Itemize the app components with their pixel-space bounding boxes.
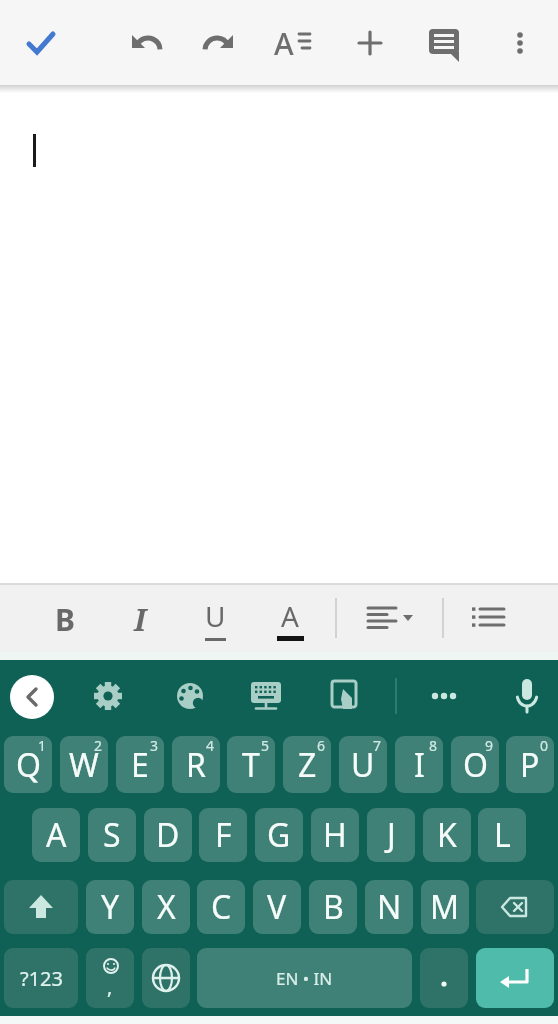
staticText: Q	[16, 743, 41, 787]
staticText: S	[103, 813, 121, 857]
staticText: 7	[373, 736, 382, 755]
staticText: M	[430, 885, 460, 929]
staticText: A	[46, 813, 67, 857]
staticText: B	[55, 599, 75, 640]
button[interactable]	[321, 672, 369, 720]
staticText: I	[414, 743, 425, 787]
staticText: 8	[429, 736, 438, 755]
button[interactable]	[496, 19, 544, 67]
button[interactable]: O	[451, 736, 499, 793]
button[interactable]	[242, 672, 290, 720]
button[interactable]: Y	[86, 880, 134, 934]
button[interactable]: B	[45, 597, 85, 641]
button[interactable]: T	[227, 736, 275, 793]
button[interactable]	[121, 19, 169, 67]
button[interactable]: S	[88, 808, 136, 862]
button[interactable]: E	[116, 736, 164, 793]
staticText: I	[134, 599, 147, 640]
staticText: G	[267, 813, 291, 857]
button[interactable]	[362, 596, 418, 640]
staticText: E	[131, 743, 149, 787]
button[interactable]	[10, 675, 54, 719]
staticText: EN • IN	[276, 967, 333, 990]
staticText: 1	[38, 736, 47, 755]
button[interactable]	[420, 672, 468, 720]
staticText: ,	[107, 973, 113, 1000]
button[interactable]: X	[142, 880, 190, 934]
staticText: 0	[540, 736, 549, 755]
button[interactable]	[84, 672, 132, 720]
staticText: V	[267, 885, 287, 929]
button[interactable]: J	[367, 808, 415, 862]
button[interactable]: Z	[283, 736, 331, 793]
button[interactable]: M	[421, 880, 469, 934]
button[interactable]	[503, 672, 551, 720]
button[interactable]: I	[120, 597, 160, 641]
button[interactable]: C	[197, 880, 245, 934]
staticText: F	[215, 813, 232, 857]
button[interactable]	[16, 19, 64, 67]
staticText: X	[157, 885, 176, 929]
staticText: N	[377, 885, 402, 929]
staticText: D	[156, 813, 180, 857]
button[interactable]	[166, 672, 214, 720]
button[interactable]: B	[309, 880, 357, 934]
button[interactable]: EN • IN	[197, 948, 412, 1008]
staticText: A	[274, 23, 294, 64]
button[interactable]: V	[253, 880, 301, 934]
staticText: B	[323, 885, 344, 929]
staticText: 2	[94, 736, 103, 755]
button[interactable]: N	[365, 880, 413, 934]
staticText: 3	[150, 736, 159, 755]
button[interactable]	[466, 596, 514, 640]
button[interactable]: A	[270, 20, 318, 66]
button[interactable]	[142, 948, 190, 1008]
button[interactable]: F	[199, 808, 247, 862]
button[interactable]: D	[144, 808, 192, 862]
button[interactable]: U	[195, 597, 235, 641]
button[interactable]: A	[270, 597, 310, 641]
button[interactable]	[420, 19, 468, 67]
staticText: H	[323, 813, 347, 857]
staticText: Z	[298, 743, 317, 787]
staticText: J	[387, 813, 396, 857]
button[interactable]: U	[339, 736, 387, 793]
button[interactable]	[420, 948, 468, 1008]
button[interactable]: H	[311, 808, 359, 862]
staticText: ?123	[20, 965, 63, 992]
staticText: U	[351, 743, 375, 787]
button[interactable]	[346, 19, 394, 67]
staticText: K	[437, 813, 457, 857]
staticText: O	[463, 743, 488, 787]
button[interactable]	[476, 880, 554, 934]
staticText: 5	[261, 736, 270, 755]
button[interactable]	[4, 880, 78, 934]
staticText: A	[281, 597, 299, 635]
button[interactable]: W	[60, 736, 108, 793]
button[interactable]: Q	[4, 736, 52, 793]
button[interactable]	[476, 948, 554, 1008]
staticText: U	[205, 597, 226, 635]
staticText: T	[242, 743, 260, 787]
button[interactable]: ,	[86, 948, 134, 1008]
button[interactable]: L	[478, 808, 526, 862]
button[interactable]	[196, 19, 244, 67]
staticText: R	[186, 743, 206, 787]
button[interactable]: A	[32, 808, 80, 862]
staticText: L	[494, 813, 511, 857]
staticText: Y	[101, 885, 120, 929]
staticText: 4	[206, 736, 215, 755]
button[interactable]: I	[395, 736, 443, 793]
button[interactable]: K	[423, 808, 471, 862]
button[interactable]: R	[172, 736, 220, 793]
button[interactable]: G	[255, 808, 303, 862]
staticText: 9	[485, 736, 494, 755]
staticText: C	[211, 885, 232, 929]
staticText: P	[520, 743, 540, 787]
staticText: W	[69, 743, 99, 787]
button[interactable]: P	[506, 736, 554, 793]
staticText: 6	[317, 736, 326, 755]
button[interactable]: ?123	[4, 948, 78, 1008]
